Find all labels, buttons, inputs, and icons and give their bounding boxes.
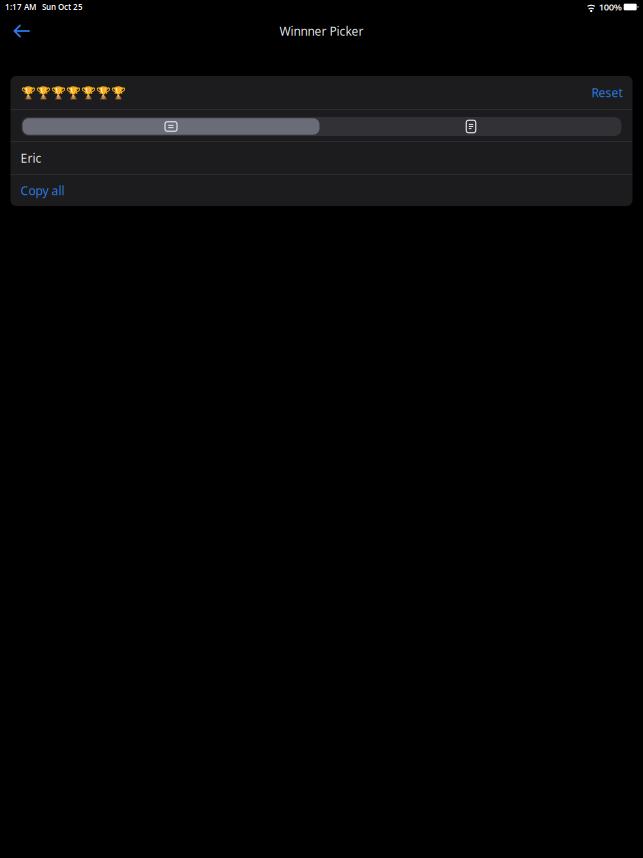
staticText: 100% (599, 1, 622, 13)
button[interactable]: Reset (591, 78, 622, 106)
staticText: Copy all (20, 182, 64, 198)
button[interactable]: Back (3, 17, 37, 45)
button[interactable]: Card layout (320, 117, 621, 136)
staticText: 1:17 AM Sun Oct 25 (5, 2, 83, 12)
staticText: Winnner Picker (279, 23, 363, 39)
button[interactable]: Copy all (10, 175, 632, 206)
staticText: Reset (591, 84, 622, 100)
button[interactable]: List layout (21, 117, 320, 136)
staticText: 🏆🏆🏆🏆🏆🏆🏆 (20, 86, 125, 99)
staticText: Eric (20, 150, 41, 166)
